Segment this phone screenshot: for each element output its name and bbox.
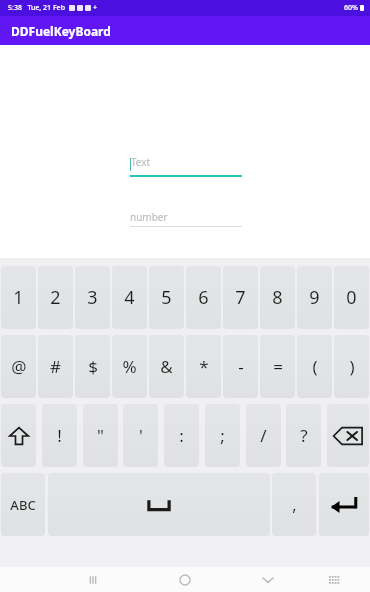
button[interactable]: #	[38, 335, 73, 398]
staticText: Text	[131, 155, 151, 169]
staticText: )	[349, 355, 355, 378]
button[interactable]: 6	[186, 266, 221, 329]
button[interactable]: !	[42, 404, 77, 467]
staticText: "	[97, 424, 104, 447]
staticText: 8	[272, 285, 283, 310]
staticText: /	[260, 424, 267, 447]
staticText: ;	[220, 424, 225, 447]
button[interactable]: Text	[130, 155, 242, 177]
staticText: &	[160, 355, 173, 378]
staticText: 1	[13, 285, 24, 310]
staticText: @	[11, 355, 27, 378]
button[interactable]: ?	[286, 404, 321, 467]
button[interactable]: 0	[334, 266, 369, 329]
staticText: 4	[124, 285, 135, 310]
button[interactable]: 9	[297, 266, 332, 329]
staticText: =	[273, 355, 283, 378]
button[interactable]: &	[149, 335, 184, 398]
staticText: +	[93, 3, 98, 13]
button[interactable]: Hide keyboard	[252, 567, 284, 592]
staticText: %	[122, 355, 137, 378]
button[interactable]: 1	[1, 266, 36, 329]
button[interactable]: /	[246, 404, 281, 467]
staticText: 2	[50, 285, 61, 310]
staticText: 5	[161, 285, 172, 310]
button[interactable]: (	[297, 335, 332, 398]
staticText: 3	[87, 285, 98, 310]
button[interactable]: )	[334, 335, 369, 398]
button[interactable]: number	[130, 206, 242, 227]
staticText: -	[238, 355, 244, 378]
staticText: '	[139, 424, 143, 447]
staticText: 6	[198, 285, 209, 310]
button[interactable]: @	[1, 335, 36, 398]
staticText: 7	[235, 285, 246, 310]
button[interactable]: Space	[48, 473, 270, 536]
button[interactable]: :	[164, 404, 199, 467]
staticText: 0	[346, 285, 357, 310]
staticText: :	[179, 424, 184, 447]
button[interactable]: *	[186, 335, 221, 398]
button[interactable]: Home	[171, 567, 199, 592]
staticText: (	[312, 355, 318, 378]
button[interactable]: 5	[149, 266, 184, 329]
staticText: 5:38 Tue, 21 Feb	[8, 3, 65, 13]
button[interactable]: ,	[272, 473, 316, 536]
button[interactable]: "	[83, 404, 118, 467]
staticText: DDFuelKeyBoard	[11, 23, 111, 39]
button[interactable]: %	[112, 335, 147, 398]
button[interactable]: -	[223, 335, 258, 398]
staticText: *	[199, 355, 209, 378]
staticText: !	[57, 424, 62, 447]
button[interactable]: Backspace	[327, 404, 369, 467]
button[interactable]: 3	[75, 266, 110, 329]
button[interactable]: =	[260, 335, 295, 398]
button[interactable]: 4	[112, 266, 147, 329]
button[interactable]: Enter	[319, 473, 369, 536]
button[interactable]: 8	[260, 266, 295, 329]
staticText: #	[50, 355, 61, 378]
button[interactable]: 7	[223, 266, 258, 329]
staticText: 9	[309, 285, 320, 310]
staticText: 60%	[344, 3, 358, 13]
button[interactable]: $	[75, 335, 110, 398]
staticText: $	[88, 355, 98, 378]
button[interactable]: ABC	[1, 473, 45, 536]
staticText: number	[130, 210, 168, 224]
staticText: ?	[300, 424, 308, 447]
button[interactable]: '	[123, 404, 158, 467]
button[interactable]: 2	[38, 266, 73, 329]
button[interactable]: Recents	[0, 567, 185, 592]
button[interactable]: ;	[205, 404, 240, 467]
staticText: ,	[292, 494, 297, 516]
button[interactable]: Switch keyboard	[320, 567, 348, 592]
button[interactable]: Shift	[1, 404, 36, 467]
staticText: ABC	[10, 496, 36, 514]
